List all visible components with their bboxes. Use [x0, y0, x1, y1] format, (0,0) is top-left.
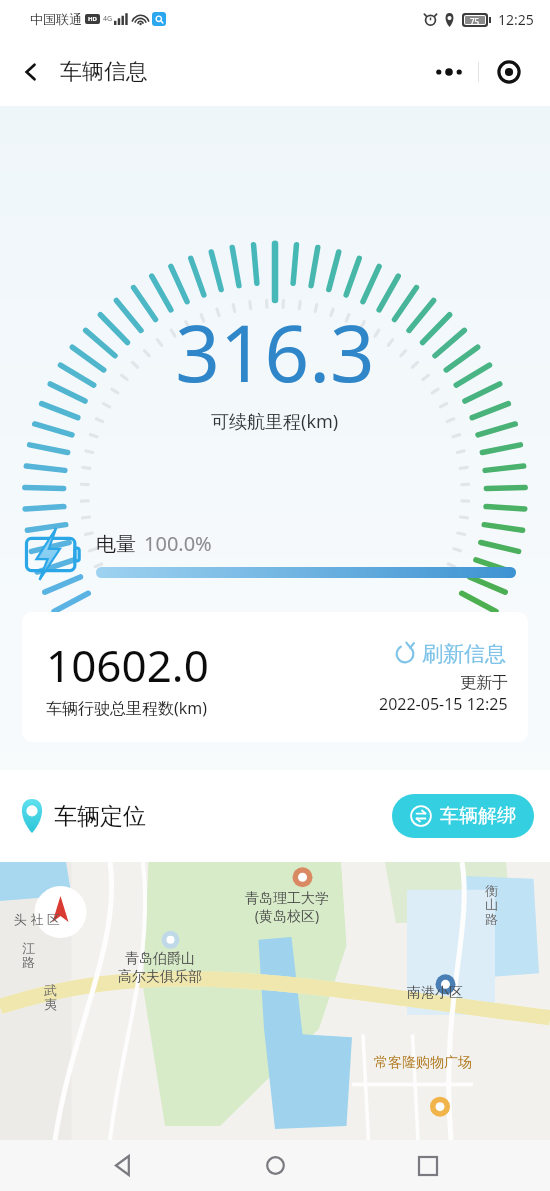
other: Close — [479, 51, 538, 93]
button[interactable]: 10602.0 — [22, 612, 528, 742]
staticText: 衡 山 路 — [485, 882, 498, 928]
staticText: 2022-05-15 12:25 — [379, 693, 508, 715]
staticText: 电量 — [96, 532, 136, 557]
staticText: 车辆行驶总里程数(km) — [46, 697, 208, 719]
staticText: HD — [88, 15, 97, 23]
button[interactable]: Back — [93, 1140, 153, 1191]
staticText: 中国联通 — [30, 11, 82, 27]
staticText: 头 社 区 — [14, 910, 60, 928]
button[interactable]: More options — [420, 51, 538, 93]
staticText: 刷新信息 — [422, 641, 506, 667]
staticText: 车辆解绑 — [440, 804, 516, 828]
staticText: 10602.0 — [46, 635, 209, 695]
staticText: 青岛伯爵山 高尔夫俱乐部 — [118, 950, 202, 985]
staticText: 南港小区 — [407, 984, 463, 1002]
staticText: 4G — [103, 14, 113, 24]
staticText: 更新于 — [460, 673, 508, 693]
button[interactable]: Recents — [398, 1140, 458, 1191]
staticText: 可续航里程(km) — [211, 409, 339, 434]
button[interactable]: 车辆解绑 — [410, 794, 516, 838]
staticText: 100.0% — [144, 530, 212, 557]
staticText: 常客隆购物广场 — [374, 1054, 472, 1072]
staticText: 12:25 — [498, 10, 534, 29]
staticText: 青岛理工大学 (黄岛校区) — [245, 890, 329, 925]
staticText: 车辆定位 — [54, 802, 146, 831]
button[interactable]: 刷新信息 — [392, 639, 508, 669]
button[interactable]: Back — [14, 55, 48, 89]
staticText: 316.3 — [175, 299, 375, 405]
staticText: 车辆信息 — [60, 58, 148, 86]
other: More options — [420, 51, 478, 93]
staticText: 武 夷 — [44, 982, 57, 1013]
staticText: 75 — [470, 16, 480, 24]
staticText: 江 路 — [22, 940, 35, 971]
button[interactable]: Home — [245, 1140, 305, 1191]
